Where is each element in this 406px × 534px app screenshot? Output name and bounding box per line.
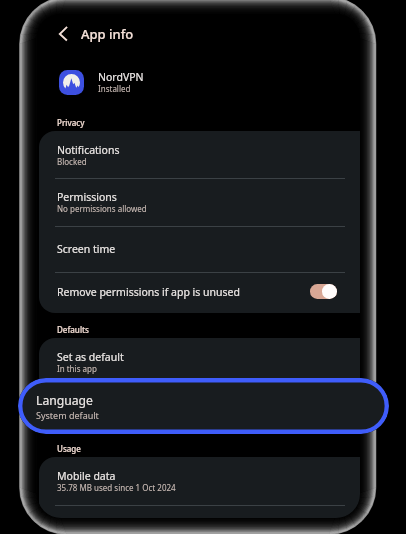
staticText: Installed (98, 83, 131, 94)
staticText: Notifications (57, 143, 120, 157)
button[interactable]: Permissions (39, 178, 360, 226)
button[interactable]: Mobile data (39, 457, 360, 505)
staticText: In this app (57, 363, 97, 374)
staticText: Defaults (57, 324, 89, 335)
button[interactable]: Language (18, 378, 389, 434)
staticText: Usage (57, 443, 81, 454)
button[interactable]: Screen time (39, 226, 360, 272)
button[interactable]: Set as default (39, 338, 360, 386)
staticText: Screen time (57, 242, 116, 256)
staticText: No permissions allowed (57, 203, 147, 214)
staticText: Set as default (57, 350, 124, 364)
button[interactable]: Navigate up (43, 14, 83, 54)
button[interactable]: Remove permissions if app is unused (39, 272, 360, 313)
staticText: NordVPN (98, 70, 144, 84)
button[interactable]: Notifications (39, 131, 360, 179)
staticText: Blocked (57, 156, 87, 167)
staticText: Permissions (57, 190, 117, 204)
staticText: Remove permissions if app is unused (57, 285, 240, 299)
staticText: System default (36, 409, 99, 421)
staticText: Mobile data (57, 469, 116, 483)
staticText: Privacy (57, 117, 85, 128)
staticText: Language (36, 392, 93, 409)
button[interactable]: NordVPN (38, 62, 360, 102)
staticText: App info (81, 25, 134, 43)
staticText: 35.78 MB used since 1 Oct 2024 (57, 482, 176, 493)
